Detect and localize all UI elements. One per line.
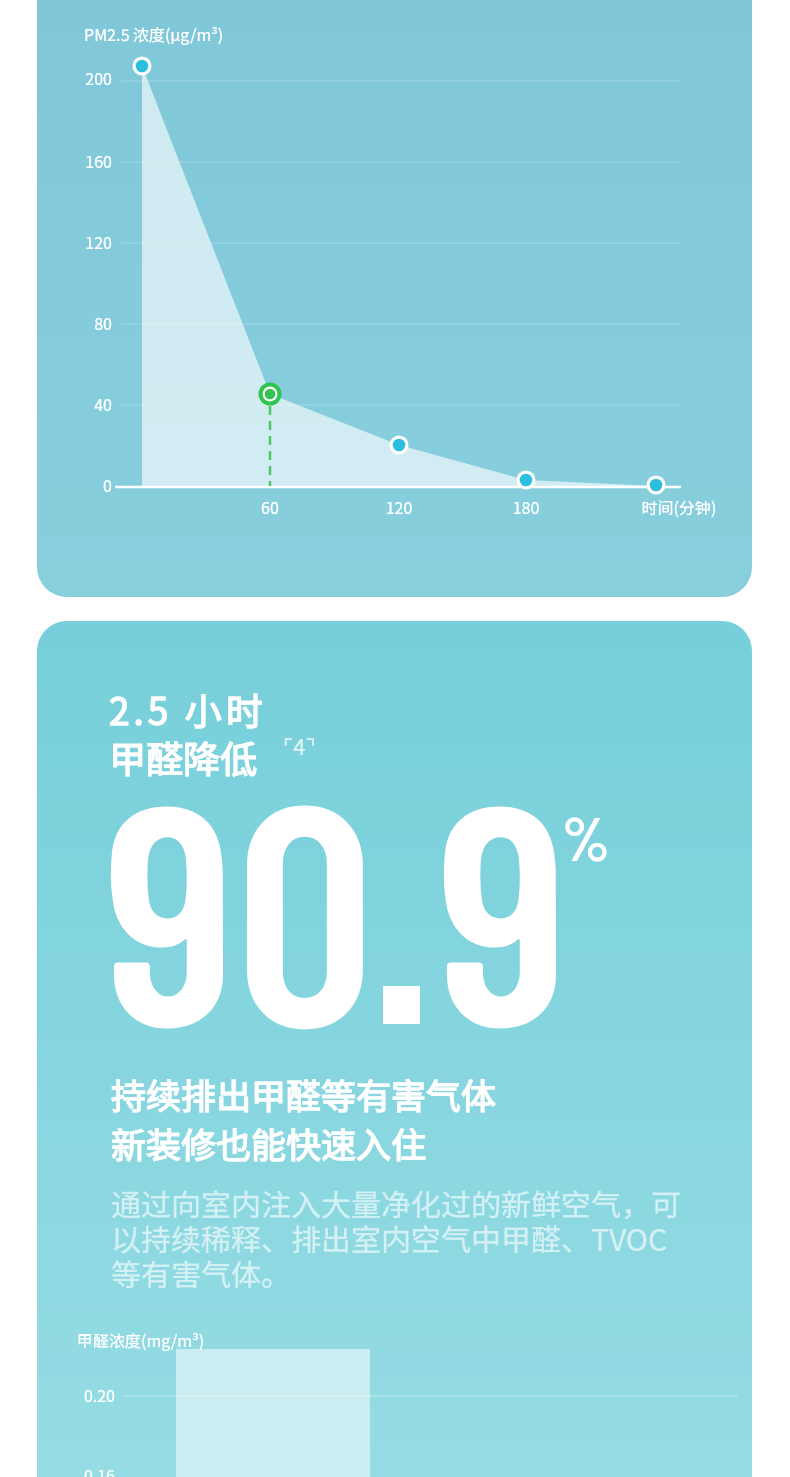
staticText: 0 — [37, 473, 112, 496]
staticText: 甲醛降低 — [109, 730, 257, 784]
staticText: 2.5 小时 — [109, 682, 267, 736]
staticText: 200 — [37, 66, 112, 89]
staticText: 0.16 — [37, 1463, 115, 1477]
staticText: PM2.5 浓度(μg/m³) — [84, 22, 224, 45]
staticText: 9 — [437, 716, 569, 1088]
staticText: 90 — [104, 716, 375, 1088]
staticText: 40 — [37, 392, 112, 415]
staticText: 180 — [476, 495, 576, 518]
staticText: ⌜4⌝ — [283, 729, 316, 761]
staticText: % — [562, 799, 610, 873]
staticText: 120 — [37, 230, 112, 253]
staticText: 0.20 — [37, 1383, 115, 1406]
staticText: 通过向室内注入大量净化过的新鲜空气，可 以持续稀释、排出室内空气中甲醛、TVOC… — [111, 1181, 681, 1295]
staticText: 时间(分钟) — [609, 495, 749, 518]
staticText: 持续排出甲醛等有害气体 — [111, 1068, 497, 1119]
staticText: 甲醛浓度(mg/m³) — [77, 1328, 205, 1351]
staticText: 120 — [349, 495, 449, 518]
staticText: 160 — [37, 149, 112, 172]
staticText: 新装修也能快速入住 — [111, 1117, 427, 1168]
staticText: 80 — [37, 311, 112, 334]
staticText: 60 — [220, 495, 320, 518]
button[interactable]: 2.5 小时 — [37, 621, 752, 1477]
button[interactable]: PM2.5 浓度(μg/m³) — [37, 0, 752, 597]
